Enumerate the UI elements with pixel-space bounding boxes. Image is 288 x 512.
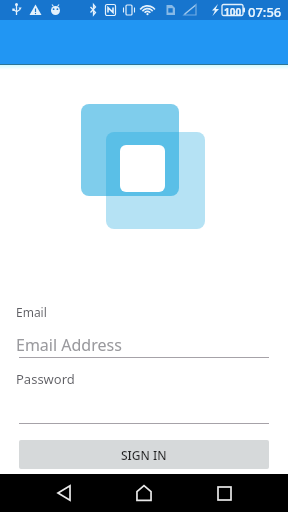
staticText: Email Address	[16, 334, 122, 356]
staticText: Password	[16, 370, 75, 388]
button[interactable]: Home	[124, 474, 164, 512]
staticText: 100	[224, 5, 242, 19]
button[interactable]: Recents	[204, 474, 244, 512]
staticText: Email	[16, 304, 47, 320]
button[interactable]: Email	[16, 304, 47, 320]
staticText: SIGN IN	[121, 447, 167, 463]
button[interactable]: SIGN IN	[19, 440, 269, 469]
button[interactable]: Back	[44, 474, 84, 512]
staticText: 07:56	[248, 3, 282, 21]
button[interactable]: Password	[16, 370, 75, 388]
